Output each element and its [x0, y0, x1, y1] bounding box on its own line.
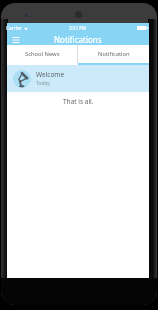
- staticText: That is all.: [63, 97, 94, 106]
- button[interactable]: Notification: [78, 45, 149, 63]
- button[interactable]: Open navigation menu: [7, 34, 25, 46]
- staticText: Today: [36, 80, 50, 87]
- staticText: Notification: [98, 50, 130, 58]
- button[interactable]: Welcome: [7, 65, 149, 92]
- button[interactable]: School News: [7, 45, 77, 63]
- staticText: Welcome: [36, 70, 65, 79]
- staticText: Notifications: [54, 34, 102, 45]
- staticText: School News: [25, 50, 60, 58]
- staticText: 3:31 PM: [69, 25, 87, 31]
- staticText: Carrier: [6, 25, 22, 32]
